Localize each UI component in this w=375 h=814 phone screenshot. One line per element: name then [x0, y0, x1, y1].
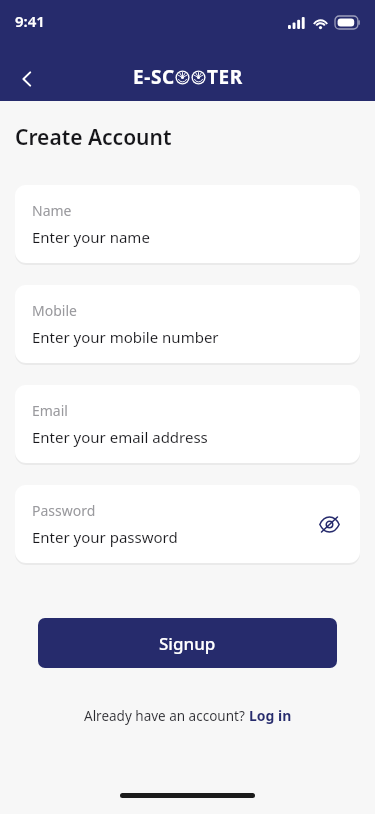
staticText: 9:41 [15, 11, 45, 31]
staticText: Enter your email address [32, 427, 208, 447]
button[interactable]: Name [15, 185, 360, 263]
staticText: Enter your mobile number [32, 327, 219, 347]
button[interactable]: Signup [38, 618, 337, 668]
staticText: Email [32, 401, 68, 420]
staticText: E-SC [133, 64, 175, 90]
button[interactable]: Show password [312, 507, 346, 541]
staticText: Password [32, 501, 96, 520]
staticText: TER [207, 64, 243, 90]
button[interactable]: Email [15, 385, 360, 463]
staticText: Signup [159, 632, 216, 655]
staticText: Enter your password [32, 527, 178, 547]
staticText: Name [32, 201, 72, 220]
button[interactable]: Back [6, 58, 48, 100]
button[interactable]: Password [15, 485, 360, 563]
staticText: Already have an account? [84, 707, 249, 725]
staticText: Mobile [32, 301, 77, 320]
staticText: Log in [249, 706, 292, 725]
button[interactable]: Log in [249, 706, 292, 725]
staticText: Enter your name [32, 227, 150, 247]
button[interactable]: Mobile [15, 285, 360, 363]
staticText: Create Account [15, 123, 172, 152]
